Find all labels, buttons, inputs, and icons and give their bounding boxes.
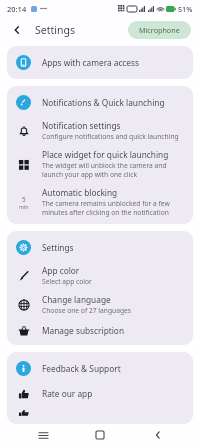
button[interactable]: Place widget for quick launching <box>7 145 193 183</box>
button[interactable]: Settings <box>7 234 193 261</box>
staticText: Place widget for quick launching <box>42 149 169 160</box>
button[interactable]: Apps with camera access <box>7 49 193 76</box>
staticText: Manage subscription <box>42 325 125 336</box>
staticText: Feedback & Support <box>42 363 121 374</box>
button[interactable]: Rate our app <box>7 382 193 405</box>
staticText: Choose one of 27 languages <box>42 306 132 315</box>
button[interactable] <box>7 405 193 421</box>
staticText: Change language <box>42 294 111 305</box>
staticText: Apps with camera access <box>42 57 139 68</box>
staticText: Notification settings <box>42 120 121 131</box>
staticText: Microphone <box>139 25 180 35</box>
staticText: 51% <box>178 4 193 14</box>
button[interactable]: App color <box>7 261 193 290</box>
staticText: The camera remains unblocked for a few m… <box>42 199 184 217</box>
staticText: Notifications & Quick launching <box>42 97 165 108</box>
staticText: min <box>19 203 29 210</box>
button[interactable]: Home <box>85 424 115 446</box>
button[interactable]: Back <box>143 424 173 446</box>
button[interactable]: Recents <box>28 424 58 446</box>
button[interactable]: Manage subscription <box>7 319 193 342</box>
staticText: The widget will unblock the camera and l… <box>42 161 184 179</box>
button[interactable]: Back <box>9 22 25 38</box>
staticText: 5 <box>22 195 26 203</box>
staticText: Settings <box>35 23 75 37</box>
button[interactable]: Microphone <box>128 21 191 39</box>
button[interactable]: Notification settings <box>7 116 193 145</box>
staticText: 20:14 <box>7 4 27 14</box>
staticText: Automatic blocking <box>42 187 118 198</box>
button[interactable]: Change language <box>7 290 193 319</box>
button[interactable]: Feedback & Support <box>7 355 193 382</box>
staticText: Configure notifications and quick launch… <box>42 132 179 141</box>
button[interactable]: Notifications & Quick launching <box>7 89 193 116</box>
staticText: Settings <box>42 242 74 253</box>
staticText: Rate our app <box>42 388 93 399</box>
staticText: Select app color <box>42 277 92 286</box>
button[interactable]: 5 <box>7 183 193 221</box>
staticText: App color <box>42 265 80 276</box>
